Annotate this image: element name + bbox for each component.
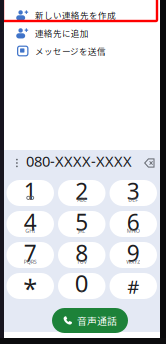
staticText: 5 bbox=[75, 207, 88, 237]
button[interactable]: 5 bbox=[58, 211, 105, 237]
button[interactable]: 連絡先に追加 bbox=[5, 24, 157, 42]
button[interactable]: 2 bbox=[58, 180, 105, 206]
button[interactable]: # bbox=[109, 273, 157, 299]
staticText: 6 bbox=[127, 207, 140, 237]
staticText: メッセージを送信 bbox=[35, 45, 106, 57]
staticText: 0 bbox=[75, 267, 89, 299]
staticText: 音声通話 bbox=[77, 313, 117, 328]
button[interactable]: 9 bbox=[109, 242, 157, 268]
staticText: WXYZ bbox=[126, 258, 140, 265]
staticText: 7 bbox=[24, 238, 37, 268]
staticText: PQRS bbox=[24, 258, 37, 265]
staticText: 4 bbox=[24, 207, 37, 237]
staticText: ABC bbox=[77, 196, 86, 203]
button[interactable]: 6 bbox=[109, 211, 157, 237]
button[interactable]: 8 bbox=[58, 242, 105, 268]
staticText: 8 bbox=[75, 238, 88, 268]
button[interactable]: * bbox=[6, 273, 54, 299]
staticText: 連絡先に追加 bbox=[35, 27, 89, 39]
button[interactable]: 1 bbox=[6, 180, 54, 206]
staticText: GHI bbox=[25, 227, 35, 234]
button[interactable]: メッセージを送信 bbox=[5, 42, 157, 60]
staticText: 新しい連絡先を作成 bbox=[35, 9, 116, 21]
staticText: + bbox=[80, 288, 83, 295]
staticText: 3 bbox=[127, 176, 140, 206]
button[interactable]: 4 bbox=[6, 211, 54, 237]
button[interactable]: 0 bbox=[58, 273, 105, 299]
staticText: MNO bbox=[127, 227, 140, 234]
button[interactable]: 音声通話 bbox=[52, 308, 128, 333]
staticText: * bbox=[23, 271, 37, 305]
staticText: 9 bbox=[127, 238, 140, 268]
button[interactable]: 3 bbox=[109, 180, 157, 206]
staticText: 080-XXXX-XXXX bbox=[26, 151, 132, 171]
staticText: 2 bbox=[75, 176, 88, 206]
staticText: JKL bbox=[78, 227, 85, 234]
button[interactable]: 新しい連絡先を作成 bbox=[5, 6, 157, 24]
button[interactable]: 7 bbox=[6, 242, 54, 268]
staticText: TUV bbox=[77, 258, 87, 265]
staticText: 1 bbox=[24, 176, 37, 206]
staticText: # bbox=[127, 274, 139, 299]
staticText: DEF bbox=[128, 196, 138, 203]
